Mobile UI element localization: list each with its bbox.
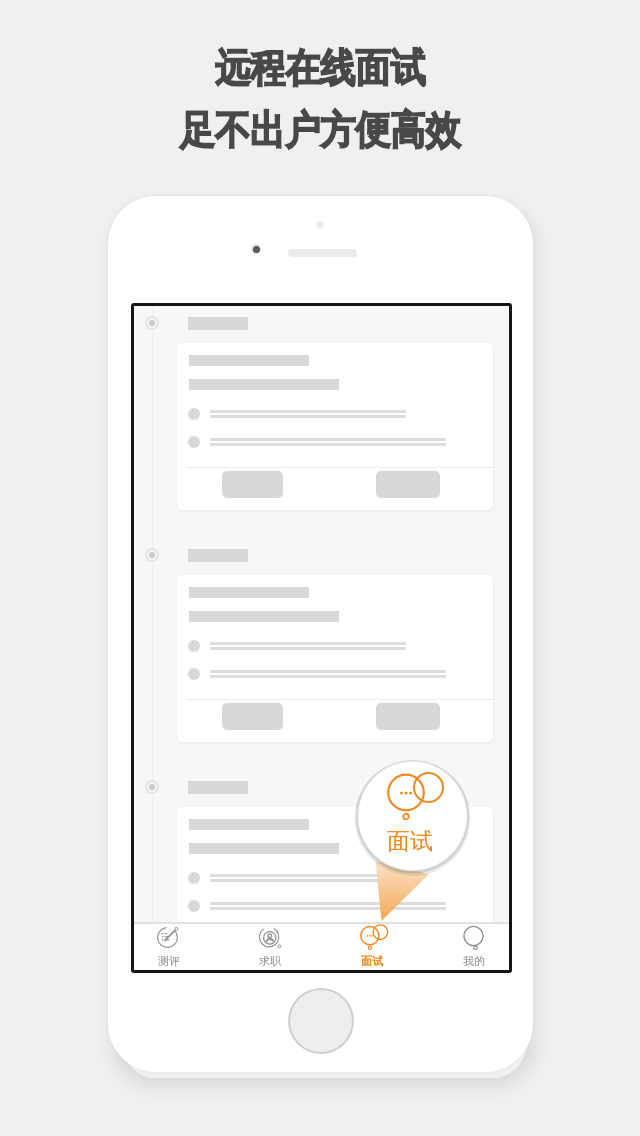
button[interactable] [177, 807, 493, 970]
staticText: 远程在线面试 [215, 43, 425, 93]
staticText: 面试 [361, 954, 383, 968]
button[interactable]: 我的 [440, 924, 508, 969]
staticText: 我的 [463, 954, 485, 968]
other: 面试 [354, 926, 390, 951]
button[interactable] [222, 703, 283, 730]
button[interactable] [376, 471, 440, 498]
button[interactable] [376, 935, 440, 962]
button[interactable]: 面试 [338, 924, 406, 969]
button[interactable]: 测评 [135, 924, 203, 969]
button[interactable] [177, 575, 493, 742]
staticText: 足不出户方便高效 [180, 105, 460, 155]
button[interactable] [222, 471, 283, 498]
button[interactable] [376, 703, 440, 730]
other: 求职 [258, 926, 283, 951]
button[interactable]: 求职 [236, 924, 304, 969]
other: 我的 [462, 926, 487, 951]
staticText: 求职 [259, 954, 281, 968]
button[interactable] [222, 935, 283, 962]
staticText: 测评 [158, 954, 180, 968]
button[interactable] [177, 343, 493, 510]
staticText: 面试 [387, 827, 433, 856]
other: 测评 [157, 926, 182, 951]
